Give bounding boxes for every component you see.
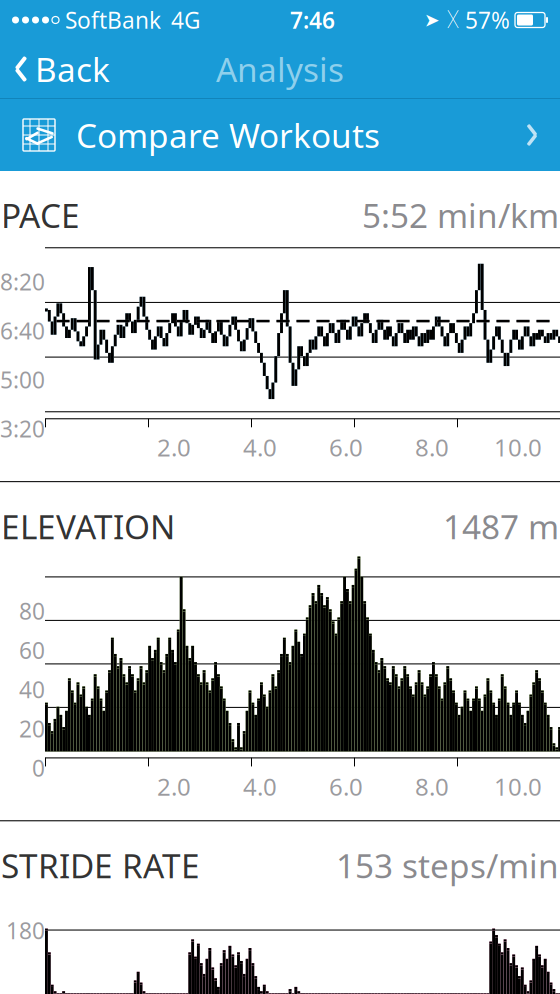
staticText: ➤ bbox=[424, 9, 440, 31]
staticText: 8:20 bbox=[0, 267, 45, 297]
staticText: 80 bbox=[19, 596, 45, 626]
staticText: 2.0 bbox=[157, 431, 191, 463]
staticText: 7:46 bbox=[290, 5, 335, 35]
staticText: 2.0 bbox=[157, 770, 191, 802]
staticText: 6:40 bbox=[0, 316, 45, 346]
staticText: Back bbox=[35, 47, 110, 91]
staticText: 60 bbox=[19, 635, 45, 665]
staticText: 180 bbox=[6, 915, 45, 946]
staticText: 5:00 bbox=[0, 365, 45, 395]
staticText: ELEVATION bbox=[1, 504, 175, 548]
button[interactable]: Back bbox=[0, 40, 124, 98]
staticText: 6.0 bbox=[329, 770, 363, 802]
staticText: Analysis bbox=[216, 47, 344, 91]
staticText: 20 bbox=[19, 713, 45, 744]
staticText: Compare Workouts bbox=[76, 113, 380, 157]
staticText: 40 bbox=[19, 674, 45, 704]
staticText: 153 steps/min bbox=[336, 843, 559, 888]
staticText: STRIDE RATE bbox=[1, 843, 200, 888]
staticText: PACE bbox=[1, 193, 80, 237]
staticText: 10.0 bbox=[494, 431, 542, 463]
staticText: 8.0 bbox=[415, 431, 449, 463]
staticText: 5:52 min/km bbox=[362, 193, 559, 237]
staticText: 6.0 bbox=[329, 431, 363, 463]
staticText: ᚷ bbox=[447, 10, 459, 30]
staticText: 4.0 bbox=[243, 770, 277, 802]
staticText: 1487 m bbox=[443, 504, 559, 548]
staticText: 57% bbox=[465, 5, 510, 35]
staticText: 4G bbox=[171, 5, 201, 35]
staticText: SoftBank bbox=[65, 5, 161, 35]
staticText: 0 bbox=[32, 753, 45, 783]
staticText: 8.0 bbox=[415, 770, 449, 802]
staticText: 3:20 bbox=[0, 414, 45, 444]
staticText: 10.0 bbox=[494, 770, 542, 802]
button[interactable]: Compare Workouts bbox=[0, 99, 560, 171]
staticText: 4.0 bbox=[243, 431, 277, 463]
